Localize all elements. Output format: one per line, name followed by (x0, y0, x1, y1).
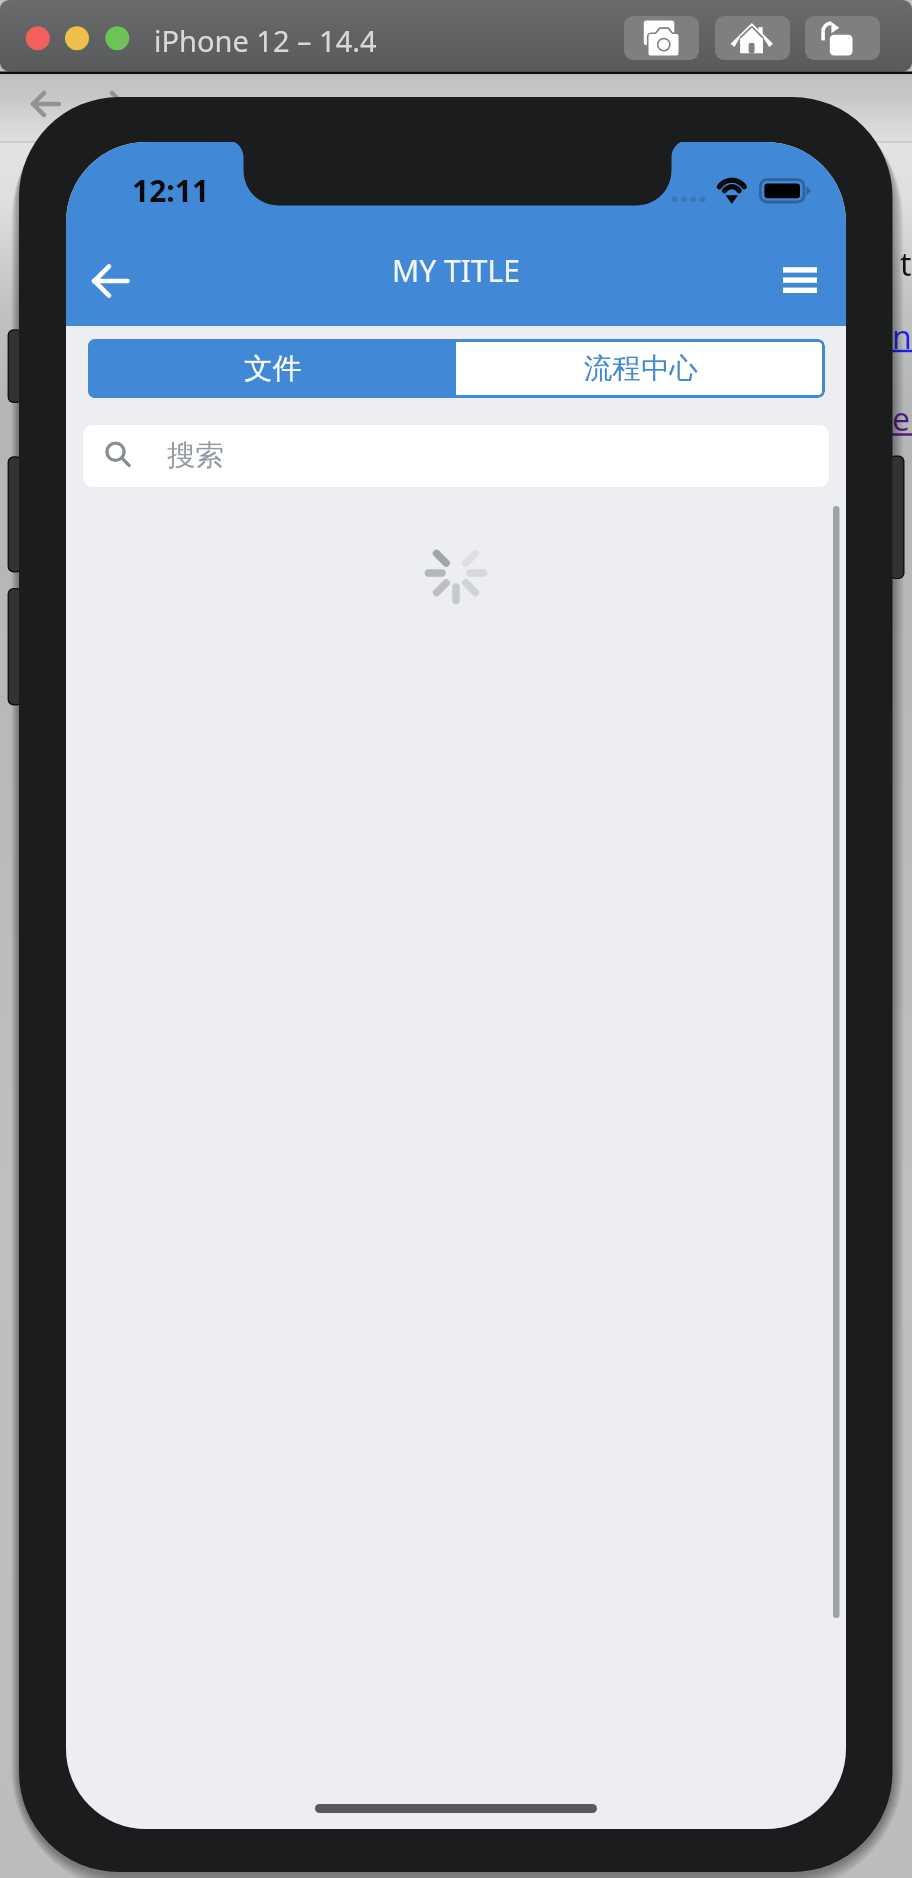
button[interactable]: Simulator toolbar button (805, 16, 880, 60)
button[interactable]: Simulator toolbar button (715, 16, 790, 60)
staticText: 文件 (244, 351, 301, 387)
button[interactable]: 搜索 (83, 425, 829, 487)
staticText: t (900, 242, 912, 286)
staticText: e (892, 397, 911, 441)
button[interactable]: 流程中心 (456, 339, 825, 398)
staticText: n (892, 315, 912, 359)
staticText: MY TITLE (392, 250, 520, 291)
staticText: 12:11 (132, 170, 210, 211)
staticText: 搜索 (167, 438, 224, 474)
button[interactable]: Simulator toolbar button (624, 16, 699, 60)
button[interactable]: 文件 (88, 339, 456, 398)
staticText: 流程中心 (584, 351, 698, 387)
button[interactable]: Menu (771, 241, 829, 321)
staticText: iPhone 12 – 14.4 (154, 21, 377, 60)
